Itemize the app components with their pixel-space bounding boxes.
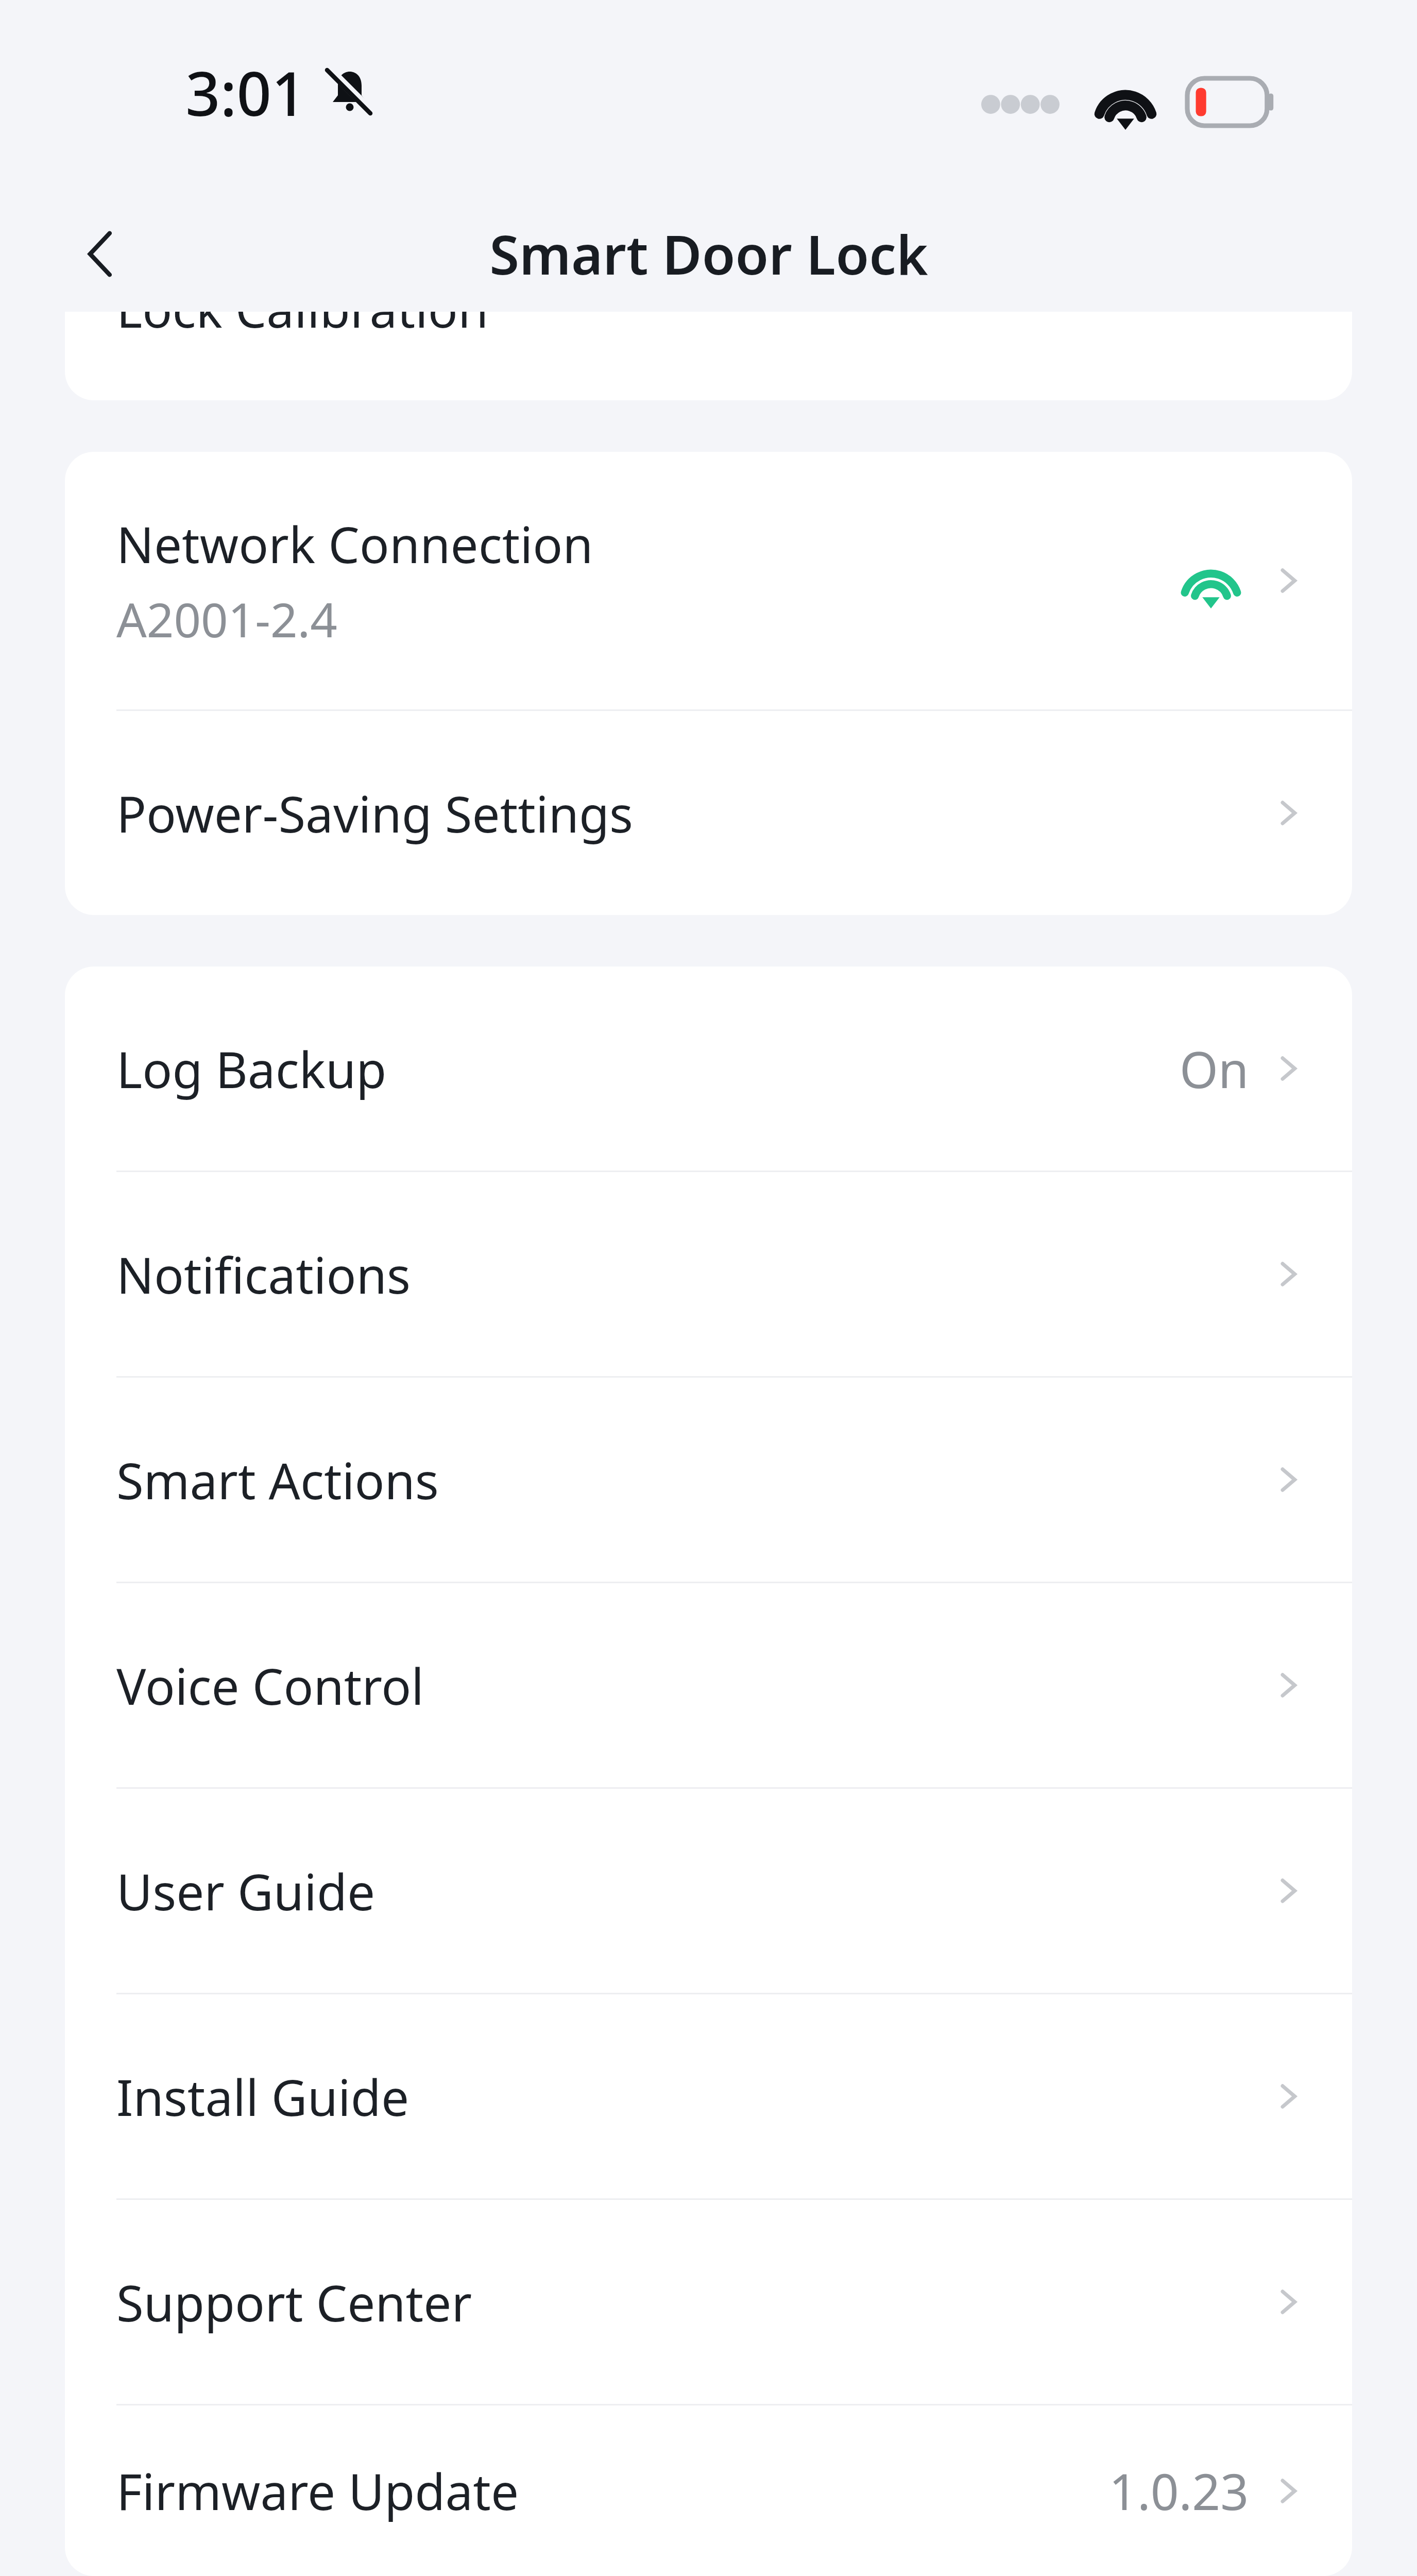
staticText: Install Guide	[116, 2063, 409, 2130]
staticText: A2001-2.4	[116, 587, 337, 651]
staticText: Power-Saving Settings	[116, 779, 634, 847]
button[interactable]: Power-Saving Settings	[65, 711, 1352, 915]
staticText: Lock Calibration	[116, 312, 489, 342]
button[interactable]: Firmware Update	[65, 2405, 1352, 2576]
staticText: Notifications	[116, 1241, 411, 1308]
staticText: Network Connection	[116, 510, 593, 578]
staticText: Firmware Update	[116, 2457, 519, 2524]
button[interactable]: Network Connection	[65, 452, 1352, 709]
button[interactable]: User Guide	[65, 1789, 1352, 1993]
staticText: 1.0.23	[1109, 2457, 1249, 2524]
button[interactable]: Lock Calibration	[65, 312, 1352, 400]
staticText: Log Backup	[116, 1035, 387, 1103]
button[interactable]: Install Guide	[65, 1994, 1352, 2198]
button[interactable]: Voice Control	[65, 1583, 1352, 1787]
button[interactable]: Back	[49, 202, 152, 306]
staticText: On	[1180, 1035, 1249, 1103]
button[interactable]: Smart Actions	[65, 1378, 1352, 1582]
button[interactable]: Notifications	[65, 1172, 1352, 1376]
button[interactable]: Log Backup	[65, 967, 1352, 1171]
staticText: 3:01	[185, 51, 306, 134]
staticText: Smart Door Lock	[489, 217, 928, 291]
staticText: Voice Control	[116, 1652, 424, 1719]
staticText: User Guide	[116, 1857, 375, 1925]
staticText: Support Center	[116, 2268, 472, 2336]
staticText: Smart Actions	[116, 1446, 439, 1514]
button[interactable]: Support Center	[65, 2200, 1352, 2404]
